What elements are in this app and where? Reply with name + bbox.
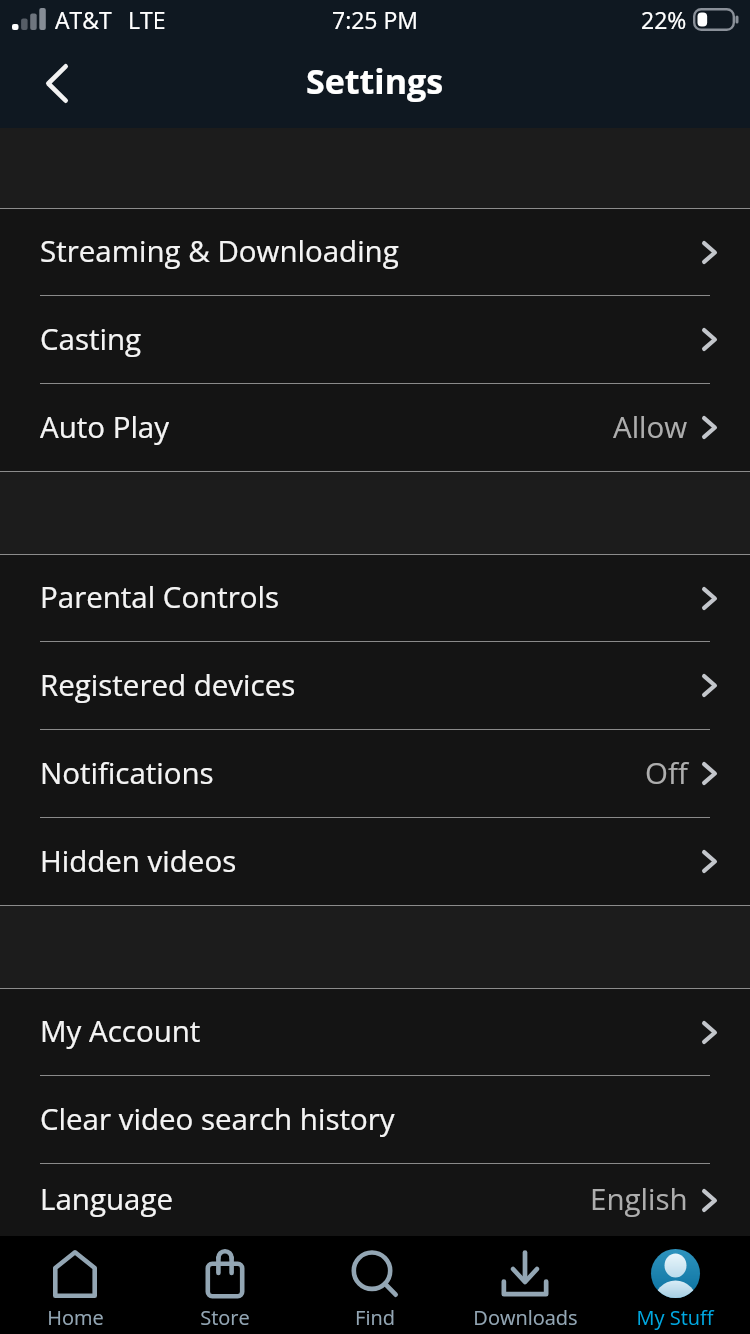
staticText: 7:25 PM (332, 4, 418, 35)
button[interactable]: Parental Controls (0, 555, 750, 641)
staticText: Language (40, 1178, 173, 1218)
button[interactable]: Streaming & Downloading (0, 209, 750, 295)
staticText: Store (200, 1304, 250, 1331)
staticText: Registered devices (40, 664, 296, 704)
staticText: Parental Controls (40, 576, 280, 616)
staticText: My Stuff (636, 1304, 714, 1331)
staticText: LTE (128, 4, 166, 35)
button[interactable]: Clear video search history (0, 1076, 750, 1163)
button[interactable]: Auto Play (0, 384, 750, 471)
staticText: Allow (613, 406, 688, 446)
button[interactable]: Registered devices (0, 642, 750, 729)
staticText: 22% (641, 4, 687, 35)
staticText: Downloads (473, 1304, 578, 1331)
button[interactable]: Hidden videos (0, 818, 750, 905)
button[interactable]: Find (300, 1236, 450, 1334)
button[interactable]: Notifications (0, 730, 750, 817)
button[interactable]: My Stuff (600, 1236, 750, 1334)
button[interactable]: Language (0, 1164, 750, 1236)
staticText: My Account (40, 1010, 201, 1050)
button[interactable]: Casting (0, 296, 750, 383)
staticText: Find (355, 1304, 395, 1331)
button[interactable]: Back (24, 54, 88, 112)
staticText: English (590, 1178, 688, 1218)
staticText: Settings (306, 58, 444, 104)
staticText: Home (47, 1304, 104, 1331)
button[interactable]: Home (0, 1236, 150, 1334)
staticText: AT&T (55, 4, 112, 35)
staticText: Streaming & Downloading (40, 230, 399, 270)
button[interactable]: Store (150, 1236, 300, 1334)
button[interactable]: My Account (0, 989, 750, 1075)
staticText: Notifications (40, 752, 214, 792)
staticText: Clear video search history (40, 1098, 395, 1138)
staticText: Off (645, 752, 688, 792)
staticText: Auto Play (40, 406, 170, 446)
staticText: Casting (40, 318, 142, 358)
button[interactable]: Downloads (450, 1236, 600, 1334)
staticText: Hidden videos (40, 840, 237, 880)
